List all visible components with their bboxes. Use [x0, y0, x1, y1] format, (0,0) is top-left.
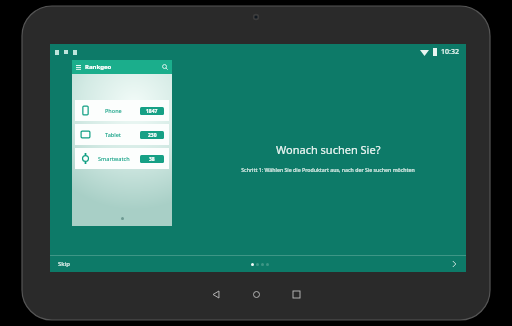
button[interactable]: Tablet [75, 124, 169, 145]
staticText: 230 [148, 132, 157, 139]
button[interactable]: Smartwatch [75, 148, 169, 169]
staticText: Schritt 1: Wählen Sie die Produktart aus… [241, 166, 415, 173]
button[interactable]: Recents [286, 284, 306, 304]
button[interactable]: Phone [75, 100, 169, 121]
staticText: Skip [58, 260, 70, 268]
button[interactable]: Home [246, 284, 266, 304]
button[interactable]: Skip [56, 258, 72, 270]
staticText: Tablet [105, 131, 121, 138]
other: Search [162, 64, 168, 70]
button[interactable]: Back [206, 284, 226, 304]
staticText: 38 [149, 156, 155, 163]
staticText: 1847 [146, 108, 158, 115]
staticText: Wonach suchen Sie? [276, 142, 381, 157]
staticText: Rankgeo [85, 63, 112, 71]
staticText: Smartwatch [98, 155, 130, 162]
button[interactable]: Next [448, 258, 460, 270]
staticText: 10:32 [441, 47, 459, 57]
staticText: Phone [105, 107, 122, 114]
